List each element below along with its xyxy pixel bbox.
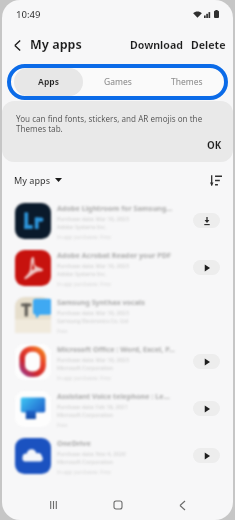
button[interactable]: Samsung Synthax vocals: [2, 291, 233, 338]
staticText: Purchase date: Mar 10, 2023: [57, 215, 129, 222]
staticText: Download: [130, 38, 183, 52]
button[interactable]: Delete: [189, 33, 228, 57]
button[interactable]: Download: [128, 33, 185, 57]
staticText: OK: [207, 139, 222, 152]
staticText: Games: [104, 76, 132, 88]
staticText: Apps: [38, 76, 59, 88]
button[interactable]: Adobe Acrobat Reader your PDF: [2, 244, 233, 291]
staticText: You can find fonts, stickers, and AR emo…: [16, 113, 203, 135]
staticText: My apps: [14, 174, 51, 186]
staticText: Microsoft Corporation: [57, 458, 113, 465]
button[interactable]: Back: [169, 492, 195, 518]
staticText: Samsung Synthax vocals: [57, 297, 145, 307]
button[interactable]: Open: [193, 354, 220, 369]
button[interactable]: Open: [193, 260, 220, 275]
button[interactable]: Download: [193, 213, 220, 228]
button[interactable]: OneDrive: [2, 432, 233, 479]
button[interactable]: Apps: [14, 68, 83, 96]
button[interactable]: Open: [193, 448, 220, 463]
staticText: Adobe Acrobat Reader your PDF: [57, 250, 172, 260]
staticText: My apps: [30, 36, 82, 53]
staticText: In-app purchases Free: [57, 281, 111, 288]
staticText: Purchase date: Nov 4, 2020: [57, 450, 126, 457]
staticText: Themes: [171, 76, 203, 88]
staticText: Microsoft Office : Word, Excel, P...: [57, 344, 175, 354]
button[interactable]: Sort: [206, 170, 226, 190]
button[interactable]: Navigate up: [6, 34, 28, 56]
staticText: Adobe Lightroom for Samsung...: [57, 203, 173, 213]
staticText: Adobe Systems Inc.: [57, 223, 107, 230]
button[interactable]: My apps: [2, 170, 68, 190]
staticText: In-app purchases Free: [57, 469, 111, 476]
staticText: Microsoft Corporation: [57, 364, 113, 371]
staticText: In-app purchases Free: [57, 234, 111, 241]
button[interactable]: Microsoft Office : Word, Excel, P...: [2, 338, 233, 385]
button[interactable]: OK: [197, 134, 233, 162]
button[interactable]: Open: [193, 401, 220, 416]
staticText: Purchase date: Mar 10, 2023: [57, 262, 129, 269]
staticText: Adobe Systems Inc.: [57, 270, 107, 277]
button[interactable]: Recent apps: [40, 492, 66, 518]
staticText: Purchase date: Mar 10, 2023: [57, 309, 129, 316]
staticText: OneDrive: [57, 438, 91, 448]
staticText: Delete: [191, 38, 226, 52]
staticText: Microsoft Corporation: [57, 411, 113, 418]
button[interactable]: Home: [105, 492, 131, 518]
staticText: Samsung Electronics Co. Ltd: [57, 317, 129, 324]
staticText: In-app purchases Free: [57, 375, 111, 382]
button[interactable]: Themes: [152, 68, 221, 96]
staticText: Free: [57, 422, 68, 429]
staticText: Free: [57, 328, 68, 335]
staticText: 10:49: [16, 8, 41, 21]
staticText: Purchase date: Mar 10, 2023: [57, 356, 129, 363]
button[interactable]: Adobe Lightroom for Samsung...: [2, 197, 233, 244]
staticText: Assistant Voice telephone : Le...: [57, 391, 170, 401]
button[interactable]: Games: [83, 68, 152, 96]
staticText: Purchase date: Feb 18, 2021: [57, 403, 128, 410]
button[interactable]: Assistant Voice telephone : Le...: [2, 385, 233, 432]
